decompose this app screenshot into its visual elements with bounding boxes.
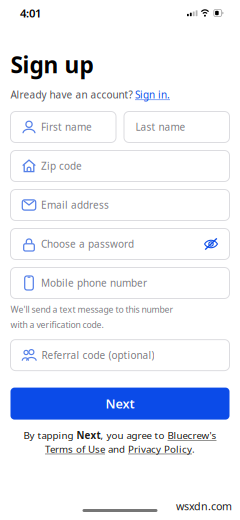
staticText: Sign in. xyxy=(135,88,170,101)
button[interactable]: Mobile phone number xyxy=(10,267,229,298)
staticText: Last name xyxy=(135,120,185,134)
staticText: Zip code xyxy=(41,159,82,173)
staticText: By tapping Next, you agree to Bluecrew's xyxy=(23,429,216,442)
staticText: Already have an account? xyxy=(10,88,132,101)
staticText: Choose a password xyxy=(41,237,134,251)
button[interactable]: Choose a password xyxy=(10,228,229,259)
staticText: wsxdn.com xyxy=(176,499,232,513)
staticText: Referral code (optional) xyxy=(41,348,154,362)
staticText: Next xyxy=(105,395,134,412)
staticText: Sign up xyxy=(10,49,93,80)
button[interactable]: Last name xyxy=(124,111,229,142)
button[interactable]: Zip code xyxy=(10,150,229,181)
staticText: Email address xyxy=(41,198,109,212)
button[interactable]: First name xyxy=(10,111,116,142)
button[interactable]: Referral code (optional) xyxy=(10,340,229,371)
staticText: 4:01 xyxy=(20,5,41,21)
staticText: We'll send a text message to this number xyxy=(10,303,173,315)
button[interactable]: Next xyxy=(10,388,229,420)
staticText: with a verification code. xyxy=(10,319,103,331)
button[interactable]: Sign in. xyxy=(135,88,170,101)
staticText: First name xyxy=(41,120,92,134)
staticText: Mobile phone number xyxy=(41,276,147,290)
button[interactable]: Email address xyxy=(10,189,229,220)
staticText: Terms of Use and Privacy Policy. xyxy=(45,442,195,456)
